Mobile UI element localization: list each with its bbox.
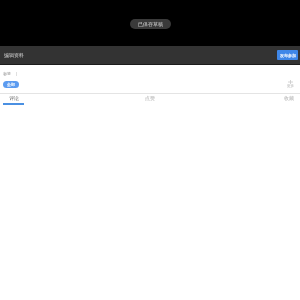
staticText: 评论 xyxy=(9,95,19,101)
button[interactable]: 点赞 xyxy=(145,95,155,101)
staticText: 发布参加 xyxy=(280,53,296,58)
staticText: 全部 xyxy=(7,82,15,87)
staticText: 已保存草稿 xyxy=(138,21,163,27)
button[interactable]: 已保存草稿 xyxy=(130,19,171,29)
button[interactable]: More options xyxy=(287,80,294,88)
button[interactable]: 全部 xyxy=(3,81,19,88)
button[interactable]: 收藏 xyxy=(284,95,294,101)
staticText: 收藏 xyxy=(284,95,294,101)
staticText: 更多 xyxy=(287,84,294,88)
staticText: ｜ xyxy=(14,71,18,76)
button[interactable]: 评论 xyxy=(3,94,24,105)
staticText: 编辑资料 xyxy=(4,52,24,58)
button[interactable]: 发布参加 xyxy=(277,50,298,60)
staticText: 标签 xyxy=(3,71,11,76)
staticText: 点赞 xyxy=(145,95,155,101)
